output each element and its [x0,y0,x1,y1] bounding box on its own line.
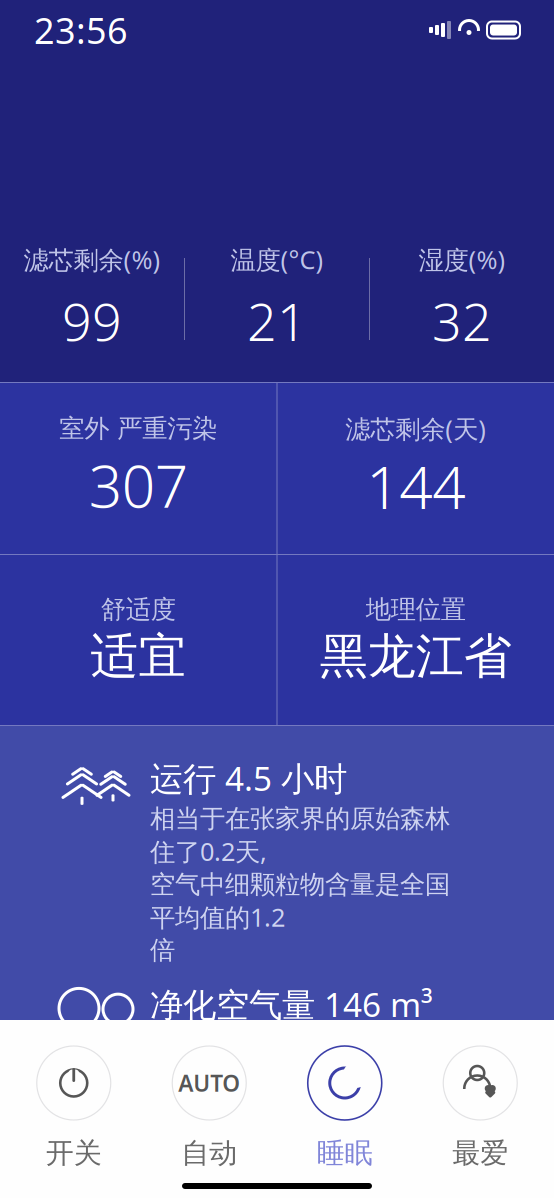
staticText: 黑龙江省 [320,627,512,686]
staticText: 307 [89,446,188,524]
staticText: 滤芯剩余(%) [23,243,160,276]
button[interactable]: 最爱 [412,1044,548,1170]
staticText: 舒适度 [101,594,176,625]
staticText: 湿度(%) [418,243,505,276]
staticText: 空气中细颗粒物含量是全国平均值的1.2 [150,869,450,934]
button[interactable]: 开关 [6,1044,141,1170]
staticText: 滤芯剩余(天) [345,412,486,445]
staticText: 开关 [46,1136,102,1170]
staticText: 温度(°C) [230,243,323,276]
button[interactable]: 睡眠 [277,1044,412,1170]
staticText: 提供了29.2万次的新鲜呼吸 [150,1097,449,1131]
staticText: 23:56 [34,6,128,54]
staticText: 净化空气量 146 m³ [150,982,433,1026]
staticText: 净化空气体积相当于0.0个热气球大小, [150,1029,460,1096]
staticText: 倍 [150,935,175,966]
staticText: AUTO [178,1068,240,1098]
staticText: 144 [366,447,465,525]
staticText: 99 [62,286,122,355]
staticText: 睡眠 [317,1136,373,1170]
staticText: 相当于在张家界的原始森林住了0.2天, [150,803,450,868]
staticText: 32 [432,286,492,355]
staticText: 适宜 [90,627,186,686]
staticText: 运行 4.5 小时 [150,756,347,800]
staticText: 21 [247,286,307,355]
button[interactable]: AUTO [141,1044,277,1170]
staticText: 地理位置 [366,594,466,625]
staticText: 室外 严重污染 [59,413,217,444]
staticText: 自动 [181,1136,237,1170]
staticText: 最爱 [452,1136,508,1170]
